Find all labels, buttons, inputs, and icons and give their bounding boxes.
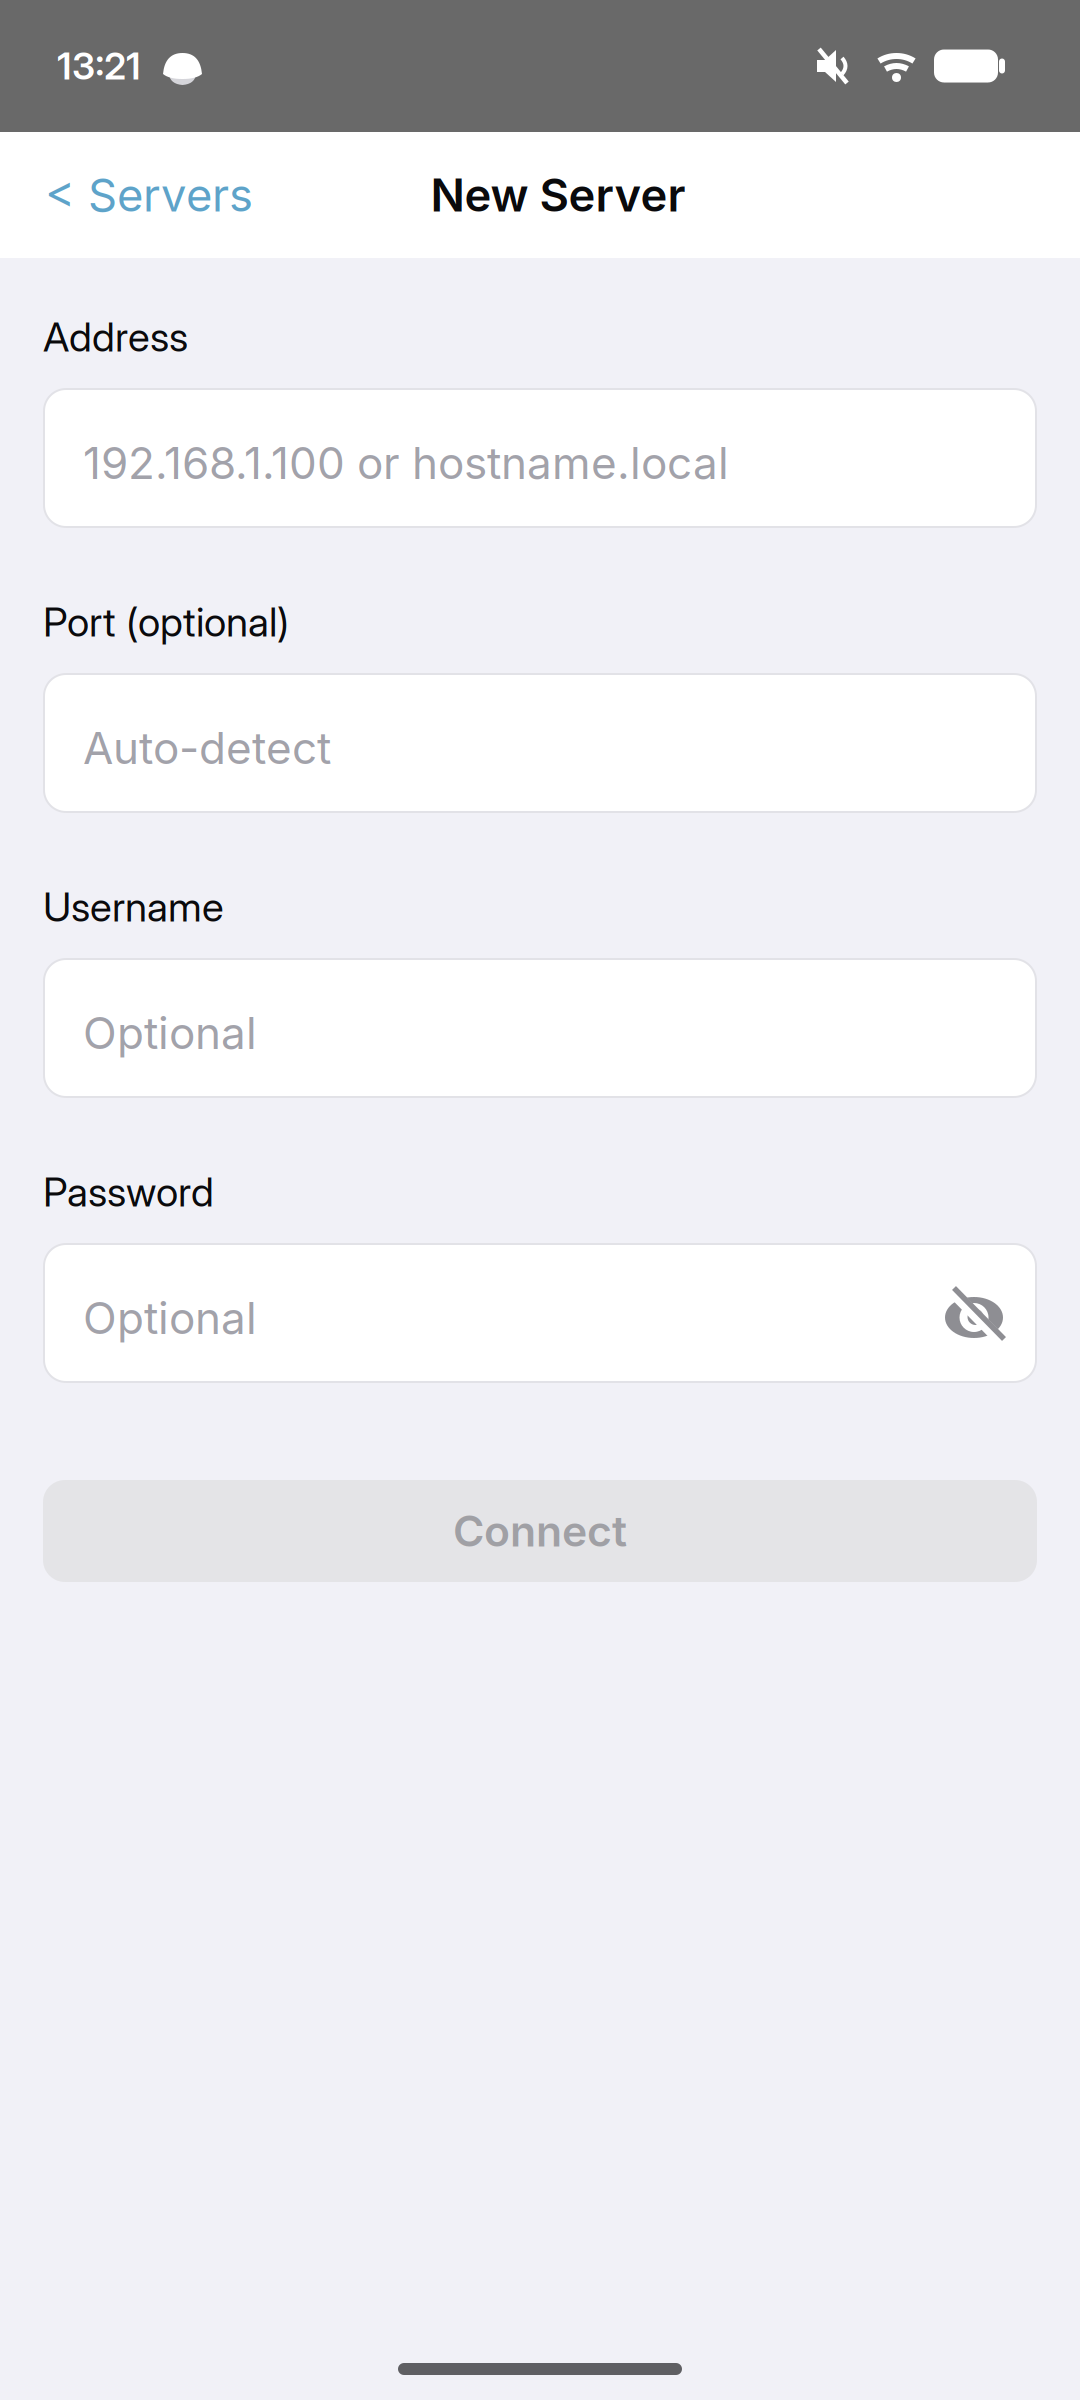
button[interactable]: 192.168.1.100 or hostname.local bbox=[43, 388, 1037, 528]
staticText: New Server bbox=[430, 168, 685, 222]
staticText: Address bbox=[43, 313, 188, 361]
staticText: 192.168.1.100 or hostname.local bbox=[83, 437, 729, 489]
button[interactable]: Optional bbox=[43, 958, 1037, 1098]
staticText: Optional bbox=[83, 1292, 257, 1344]
staticText: Auto-detect bbox=[83, 722, 331, 774]
button[interactable]: Back to Servers bbox=[45, 168, 253, 222]
staticText: < Servers bbox=[45, 168, 253, 222]
staticText: Port (optional) bbox=[43, 598, 289, 646]
button[interactable]: Show password bbox=[947, 1285, 1007, 1341]
button[interactable]: Auto-detect bbox=[43, 673, 1037, 813]
staticText: Connect bbox=[453, 1506, 627, 1556]
button[interactable]: Connect bbox=[43, 1480, 1037, 1582]
staticText: Optional bbox=[83, 1007, 257, 1059]
staticText: Username bbox=[43, 883, 224, 931]
staticText: 13:21 bbox=[57, 44, 141, 88]
staticText: Password bbox=[43, 1168, 214, 1216]
button[interactable]: Optional bbox=[43, 1243, 1037, 1383]
